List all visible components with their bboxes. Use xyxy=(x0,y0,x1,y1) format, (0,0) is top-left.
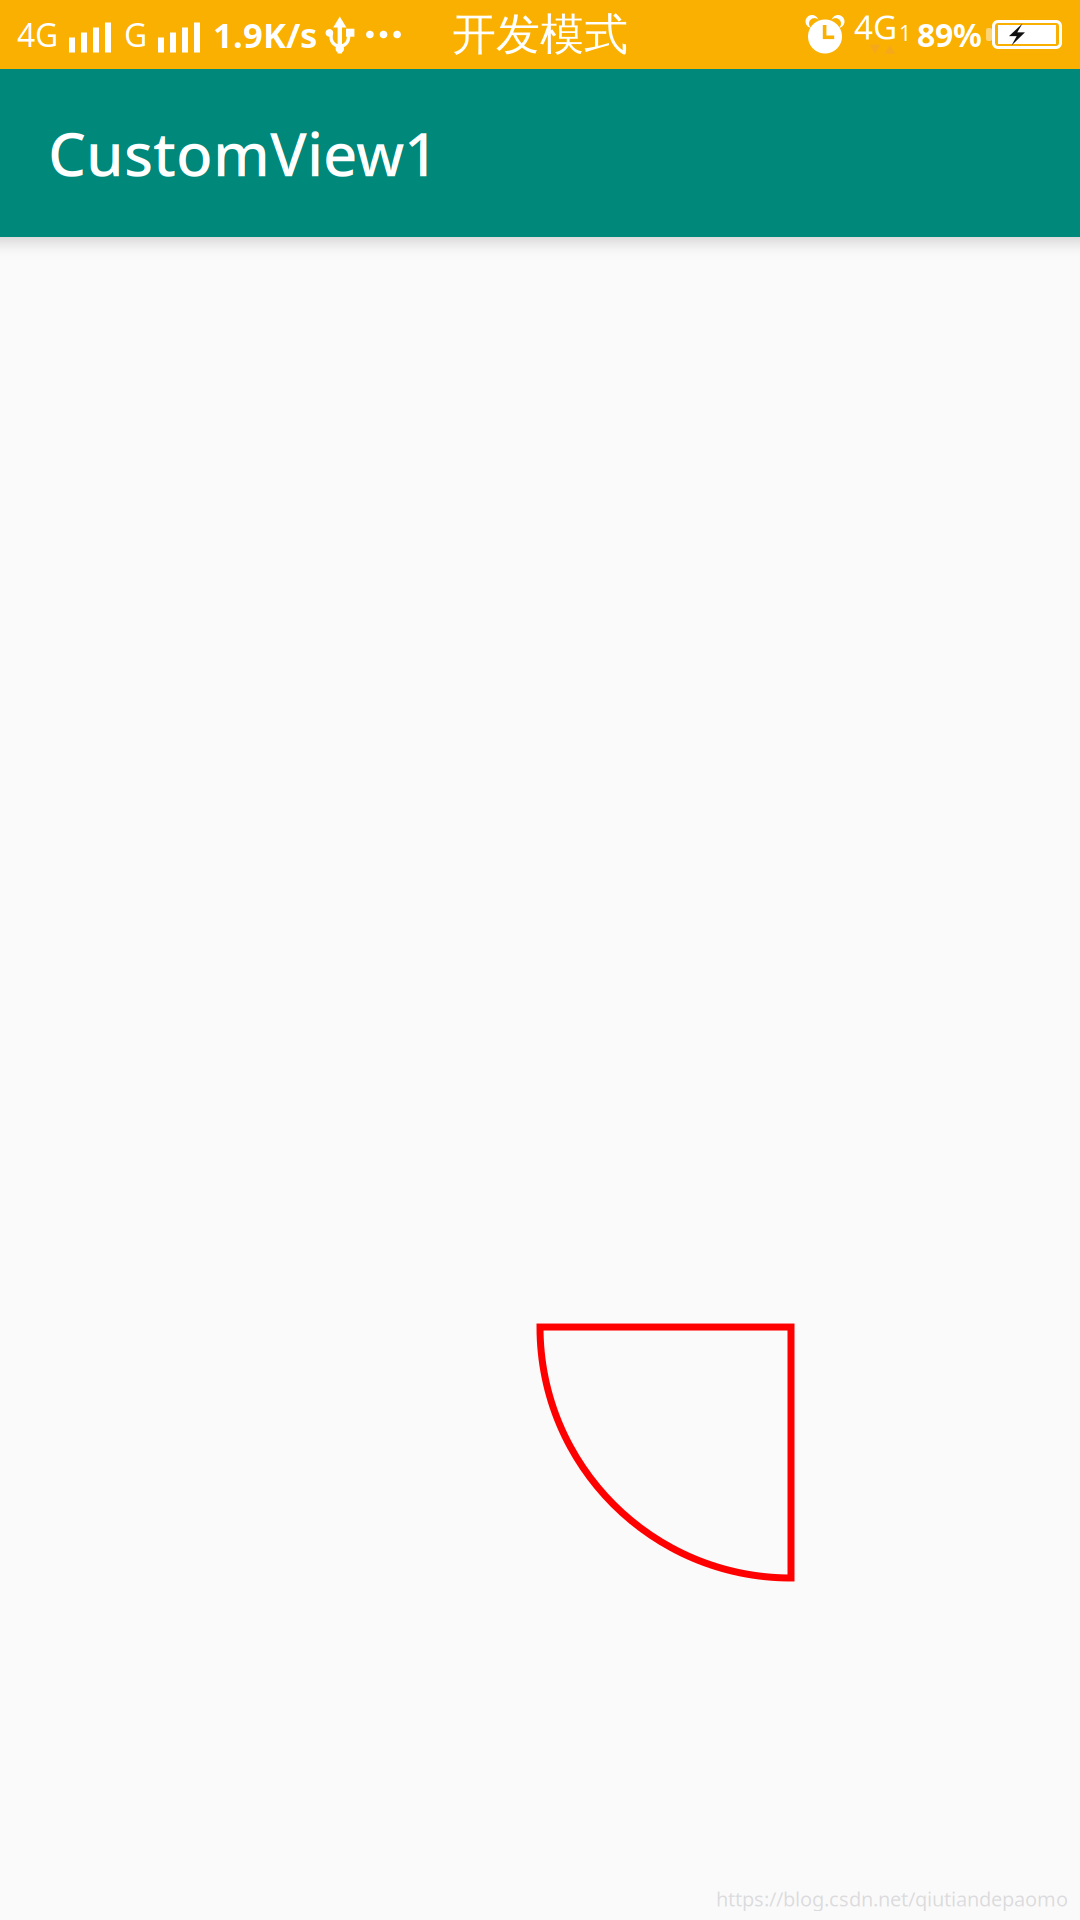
staticText: 1 xyxy=(899,18,911,47)
staticText: CustomView1 xyxy=(48,113,438,193)
staticText: 89% xyxy=(917,13,982,56)
staticText: https://blog.csdn.net/qiutiandepaomo xyxy=(716,1885,1068,1912)
staticText: 4G xyxy=(854,4,897,49)
staticText: 4G xyxy=(17,13,58,56)
button[interactable]: More status icons xyxy=(357,13,402,55)
staticText: 开发模式 xyxy=(452,7,628,61)
staticText: G xyxy=(124,13,147,56)
staticText: 1.9K/s xyxy=(213,11,317,57)
button[interactable]: CustomView1 xyxy=(0,69,1080,237)
